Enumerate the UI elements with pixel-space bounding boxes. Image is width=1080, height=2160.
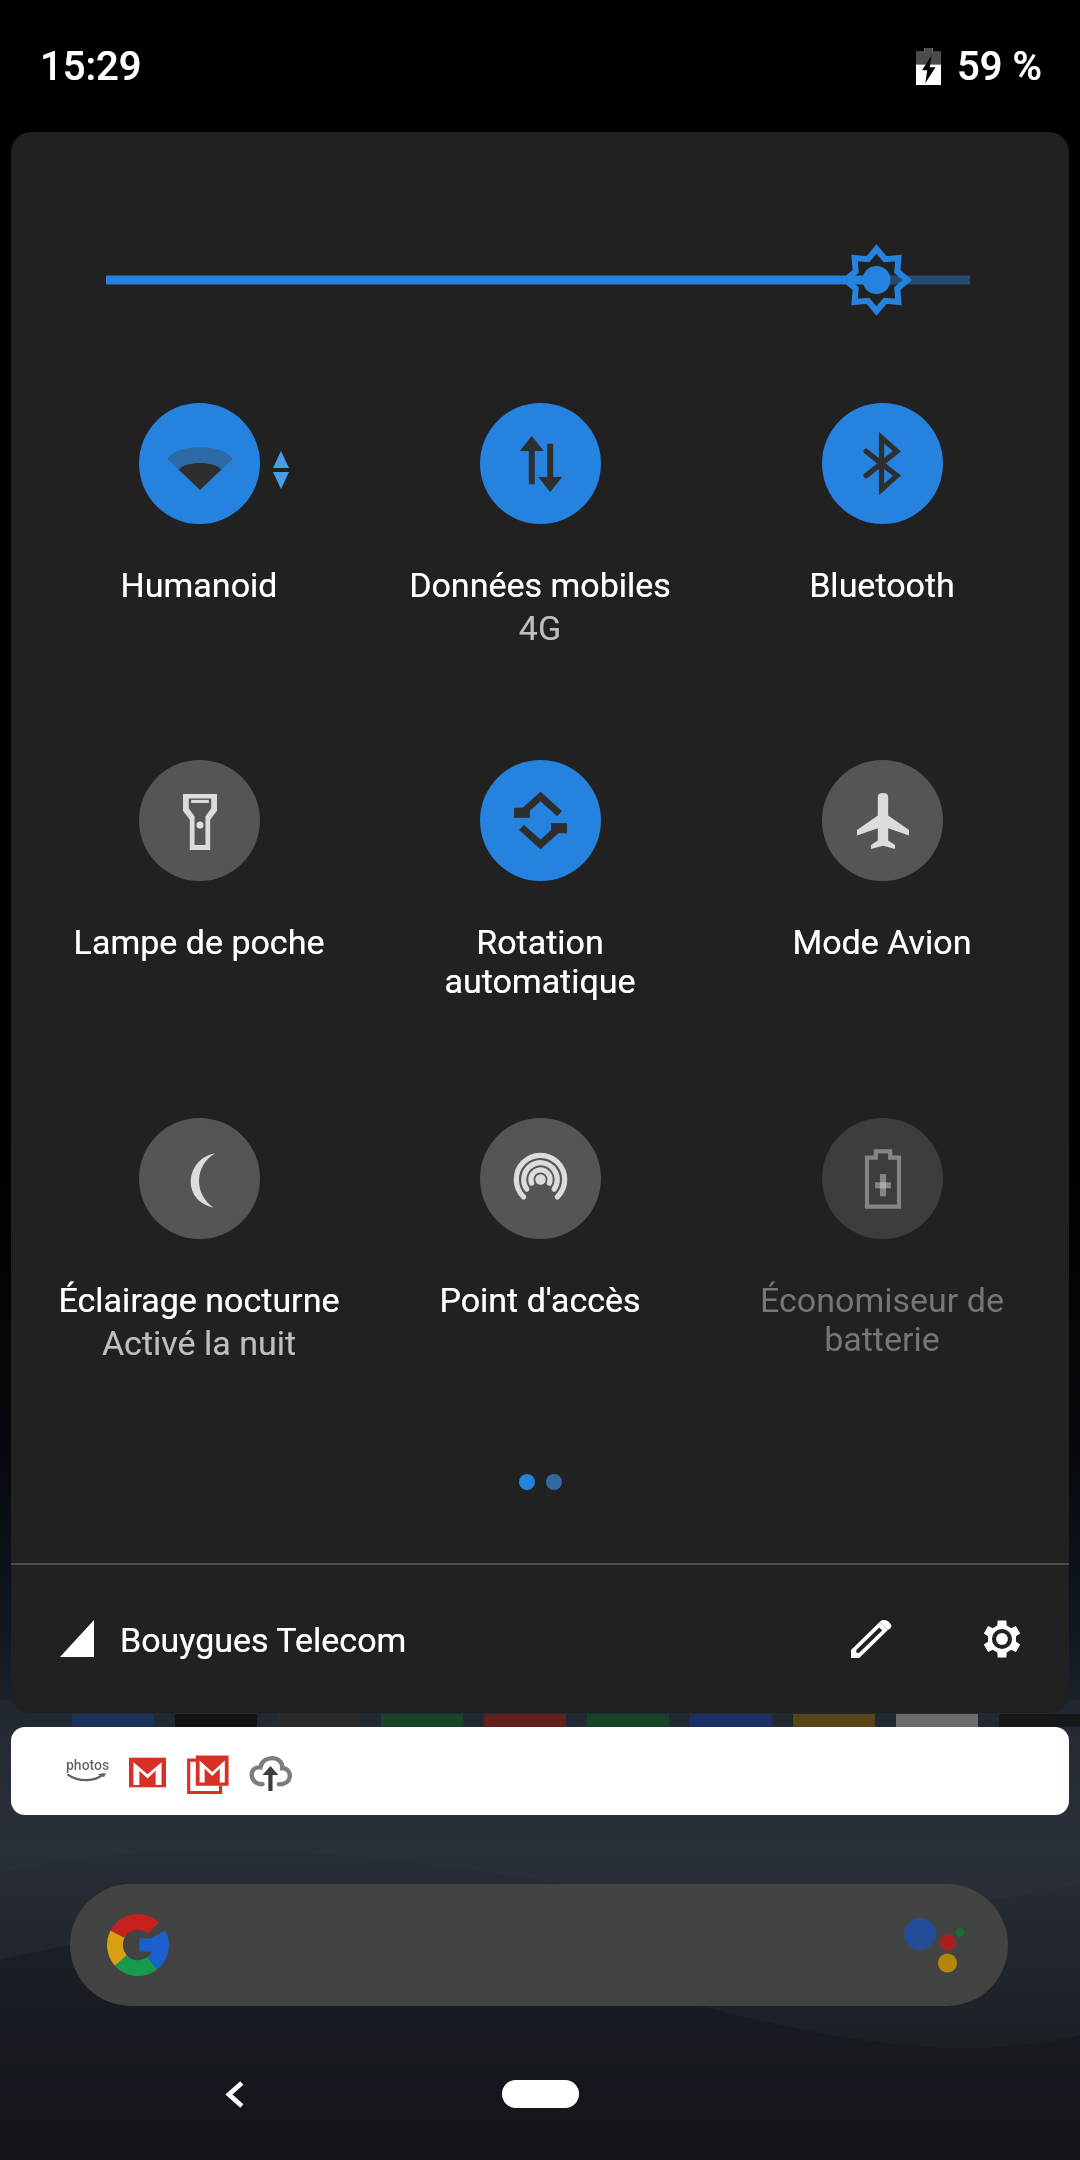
staticText: Données mobiles — [375, 565, 705, 605]
button[interactable]: Home — [502, 2080, 579, 2108]
staticText: Bouygues Telecom — [120, 1620, 407, 1660]
button[interactable]: Rotation automatique — [375, 748, 705, 1008]
staticText: Lampe de poche — [34, 922, 364, 962]
staticText: Éclairage nocturne — [34, 1280, 364, 1320]
button[interactable]: Mode Avion — [717, 748, 1047, 1008]
button[interactable]: Éclairage nocturne — [34, 1106, 364, 1366]
staticText: Activé la nuit — [34, 1323, 364, 1363]
staticText: 59 % — [957, 43, 1042, 90]
button[interactable]: Settings — [957, 1594, 1047, 1684]
staticText: Humanoid — [34, 565, 364, 605]
staticText: Point d'accès — [375, 1280, 705, 1320]
button[interactable]: Humanoid — [34, 391, 364, 651]
button[interactable]: Edit tiles — [826, 1593, 916, 1683]
button[interactable]: Bouygues Telecom — [120, 1612, 407, 1668]
button[interactable]: Back — [195, 2054, 275, 2134]
staticText: Mode Avion — [717, 922, 1047, 962]
staticText: 15:29 — [40, 43, 142, 90]
button[interactable]: Lampe de poche — [34, 748, 364, 1008]
button[interactable]: photos — [11, 1727, 1069, 1815]
button[interactable]: Search — [70, 1884, 1008, 2006]
staticText: Bluetooth — [717, 565, 1047, 605]
button[interactable]: Économiseur de batterie — [717, 1106, 1047, 1366]
button[interactable]: Point d'accès — [375, 1106, 705, 1366]
staticText: photos — [66, 1757, 110, 1773]
staticText: 4G — [375, 608, 705, 648]
staticText: Économiseur de batterie — [717, 1280, 1047, 1359]
button[interactable]: Données mobiles — [375, 391, 705, 651]
staticText: Rotation automatique — [375, 922, 705, 1001]
button[interactable]: Bluetooth — [717, 391, 1047, 651]
